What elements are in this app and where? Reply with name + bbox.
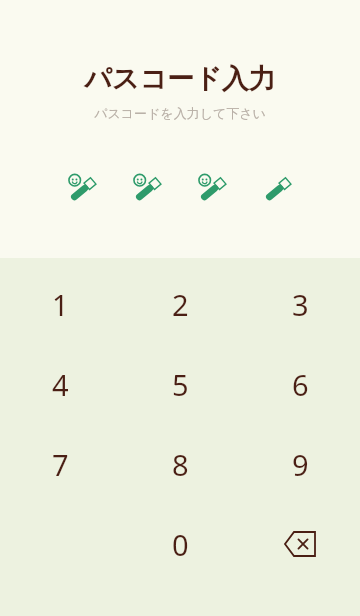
button[interactable]: Delete (240, 504, 360, 584)
staticText: 0 (172, 525, 189, 564)
staticText: 2 (172, 285, 189, 324)
staticText: 9 (292, 445, 309, 484)
button[interactable]: 8 (120, 424, 240, 504)
button[interactable]: 5 (120, 344, 240, 424)
staticText: 5 (172, 365, 189, 404)
staticText: 6 (292, 365, 309, 404)
staticText: 1 (52, 285, 69, 324)
button[interactable]: 3 (240, 264, 360, 344)
staticText: パスコード入力 (84, 62, 276, 96)
staticText: 8 (172, 445, 189, 484)
button[interactable]: 7 (0, 424, 120, 504)
staticText: 7 (52, 445, 69, 484)
button[interactable]: 9 (240, 424, 360, 504)
button[interactable]: 1 (0, 264, 120, 344)
button[interactable]: 2 (120, 264, 240, 344)
staticText: パスコードを入力して下さい (94, 105, 266, 121)
button[interactable]: 6 (240, 344, 360, 424)
staticText: 3 (292, 285, 309, 324)
button[interactable]: 0 (120, 504, 240, 584)
button[interactable]: 4 (0, 344, 120, 424)
staticText: 4 (52, 365, 69, 404)
